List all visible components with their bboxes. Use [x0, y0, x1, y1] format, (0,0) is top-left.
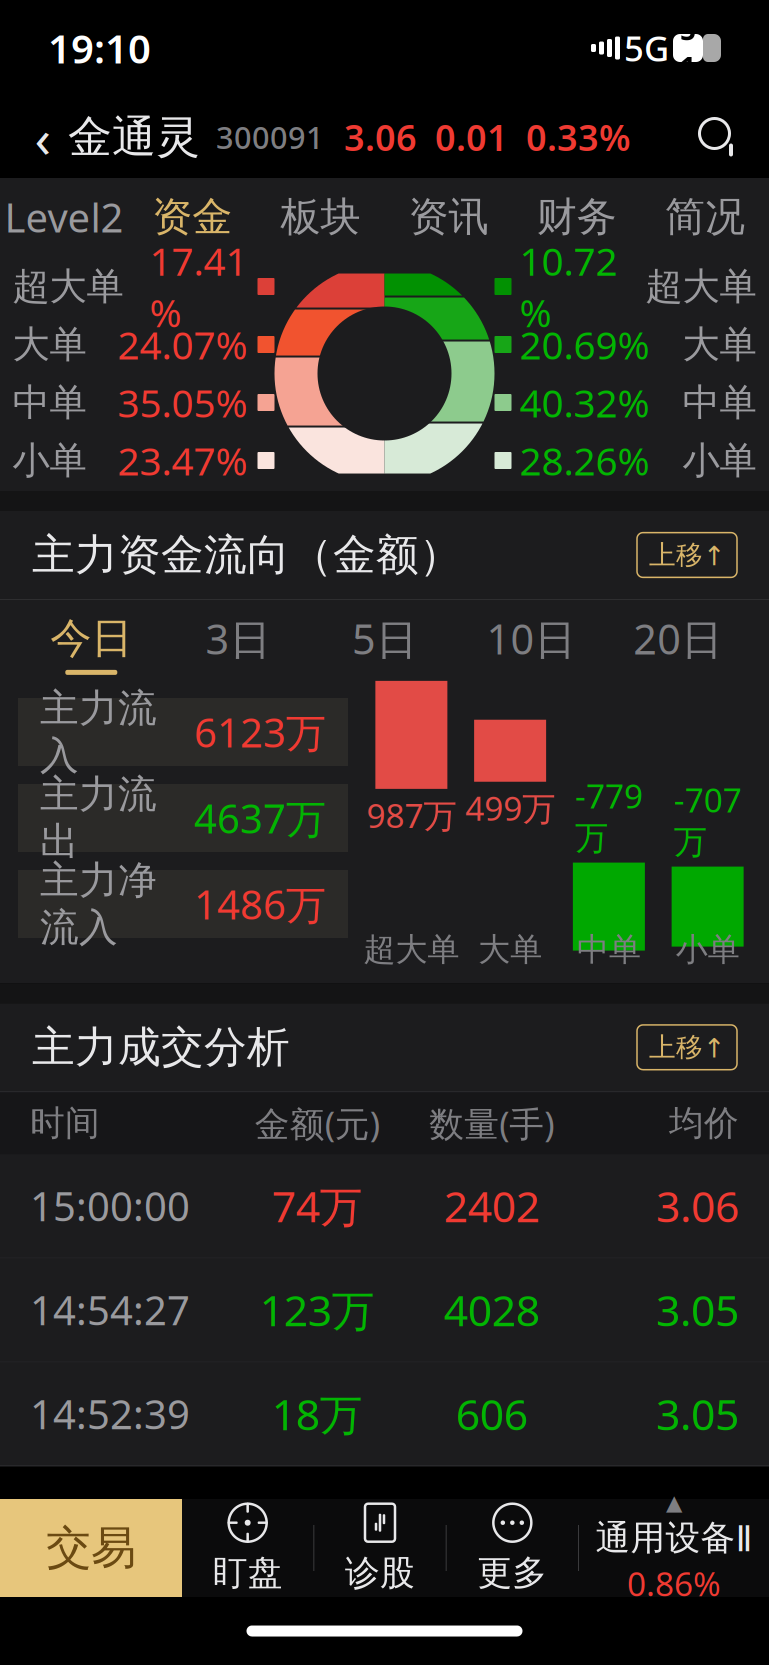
- staticText: 盯盘: [213, 1552, 283, 1594]
- button[interactable]: 更多: [447, 1499, 578, 1597]
- button[interactable]: Level2: [0, 178, 128, 256]
- staticText: 14:52:39: [30, 1387, 190, 1440]
- button[interactable]: 搜索: [687, 104, 749, 170]
- button[interactable]: 15:00:00: [0, 1154, 769, 1257]
- staticText: 中单: [577, 930, 641, 969]
- button[interactable]: 上移↑: [637, 1025, 737, 1070]
- staticText: 4637万: [194, 791, 326, 844]
- staticText: 23.47%: [117, 435, 247, 486]
- staticText: 987万: [366, 793, 456, 837]
- staticText: -707万: [674, 777, 742, 863]
- staticText: 19:10: [48, 21, 151, 74]
- button[interactable]: ▲: [579, 1499, 769, 1597]
- staticText: 123万: [260, 1281, 375, 1338]
- staticText: 1486万: [194, 877, 326, 930]
- staticText: 上移↑: [649, 539, 725, 571]
- staticText: 24.07%: [117, 319, 247, 370]
- staticText: 2402: [444, 1177, 540, 1234]
- staticText: 20.69%: [519, 319, 649, 370]
- staticText: 18万: [272, 1385, 363, 1442]
- staticText: 简况: [665, 192, 745, 241]
- staticText: 大单: [478, 930, 542, 969]
- staticText: 小单: [682, 438, 756, 483]
- staticText: 资金: [152, 192, 232, 241]
- staticText: 通用设备Ⅱ: [595, 1517, 752, 1559]
- staticText: 交易: [46, 1520, 136, 1576]
- staticText: 主力成交分析: [32, 1021, 290, 1073]
- staticText: 小单: [12, 438, 86, 483]
- staticText: 6123万: [194, 705, 326, 758]
- button[interactable]: 今日: [18, 600, 165, 688]
- staticText: 3日: [205, 611, 270, 666]
- button[interactable]: 交易: [0, 1499, 182, 1597]
- button[interactable]: 资讯: [384, 178, 513, 256]
- button[interactable]: 14:52:39: [0, 1362, 769, 1465]
- staticText: 0.86%: [627, 1561, 721, 1606]
- staticText: 10日: [487, 611, 576, 666]
- staticText: 0.01: [435, 113, 508, 161]
- button[interactable]: 5日: [311, 600, 458, 688]
- staticText: 3.06: [656, 1177, 739, 1234]
- button[interactable]: 简况: [641, 178, 769, 256]
- staticText: 主力流入: [40, 684, 157, 779]
- button[interactable]: 3日: [165, 600, 311, 688]
- button[interactable]: 10日: [458, 600, 604, 688]
- staticText: 主力资金流向（金额）: [32, 529, 462, 581]
- staticText: 中单: [12, 380, 86, 425]
- staticText: 数量(手): [429, 1100, 554, 1146]
- staticText: 17.41%: [149, 235, 247, 338]
- staticText: 74万: [272, 1177, 363, 1234]
- staticText: -779万: [575, 773, 643, 859]
- staticText: 20日: [633, 611, 722, 666]
- staticText: 小单: [676, 930, 740, 969]
- staticText: 超大单: [12, 264, 123, 309]
- staticText: 3.06: [344, 113, 417, 161]
- staticText: 51: [680, 11, 696, 85]
- button[interactable]: 诊股: [314, 1499, 446, 1597]
- staticText: 金额(元): [255, 1100, 380, 1146]
- button[interactable]: 资金: [128, 178, 256, 256]
- staticText: 资讯: [409, 192, 489, 241]
- staticText: 606: [456, 1385, 528, 1442]
- staticText: 主力流出: [40, 770, 157, 865]
- staticText: 板块: [280, 192, 360, 241]
- staticText: 今日: [50, 613, 132, 664]
- staticText: 5G: [624, 25, 669, 71]
- staticText: 财务: [537, 192, 617, 241]
- staticText: 35.05%: [117, 377, 247, 428]
- staticText: 15:00:00: [30, 1179, 190, 1232]
- staticText: 5日: [352, 611, 417, 666]
- staticText: 诊股: [345, 1552, 415, 1594]
- button[interactable]: 财务: [513, 178, 641, 256]
- button[interactable]: 盯盘: [182, 1499, 313, 1597]
- staticText: 499万: [465, 786, 555, 830]
- staticText: 300091: [216, 117, 324, 157]
- button[interactable]: 14:54:27: [0, 1258, 769, 1361]
- staticText: 均价: [669, 1102, 739, 1145]
- staticText: 大单: [682, 322, 756, 367]
- staticText: 3.05: [656, 1281, 739, 1338]
- staticText: 超大单: [645, 264, 756, 309]
- staticText: 上移↑: [649, 1031, 725, 1064]
- staticText: 3.05: [656, 1385, 739, 1442]
- staticText: 时间: [30, 1102, 100, 1145]
- staticText: 金通灵: [68, 110, 200, 164]
- staticText: Level2: [5, 190, 124, 243]
- button[interactable]: 20日: [604, 600, 751, 688]
- button[interactable]: 上移↑: [637, 533, 737, 577]
- button[interactable]: 板块: [256, 178, 384, 256]
- staticText: ‹: [34, 102, 51, 172]
- staticText: 0.33%: [526, 113, 631, 161]
- staticText: ▲: [666, 1490, 682, 1515]
- staticText: 10.72%: [519, 235, 617, 338]
- button[interactable]: 返回: [20, 104, 66, 170]
- staticText: 中单: [682, 380, 756, 425]
- staticText: 28.26%: [519, 435, 649, 486]
- staticText: 超大单: [363, 930, 459, 969]
- staticText: 大单: [12, 322, 86, 367]
- staticText: 更多: [477, 1552, 547, 1594]
- staticText: 14:54:27: [30, 1283, 190, 1336]
- staticText: 主力净流入: [40, 856, 157, 951]
- staticText: 40.32%: [519, 377, 649, 428]
- staticText: 4028: [444, 1281, 540, 1338]
